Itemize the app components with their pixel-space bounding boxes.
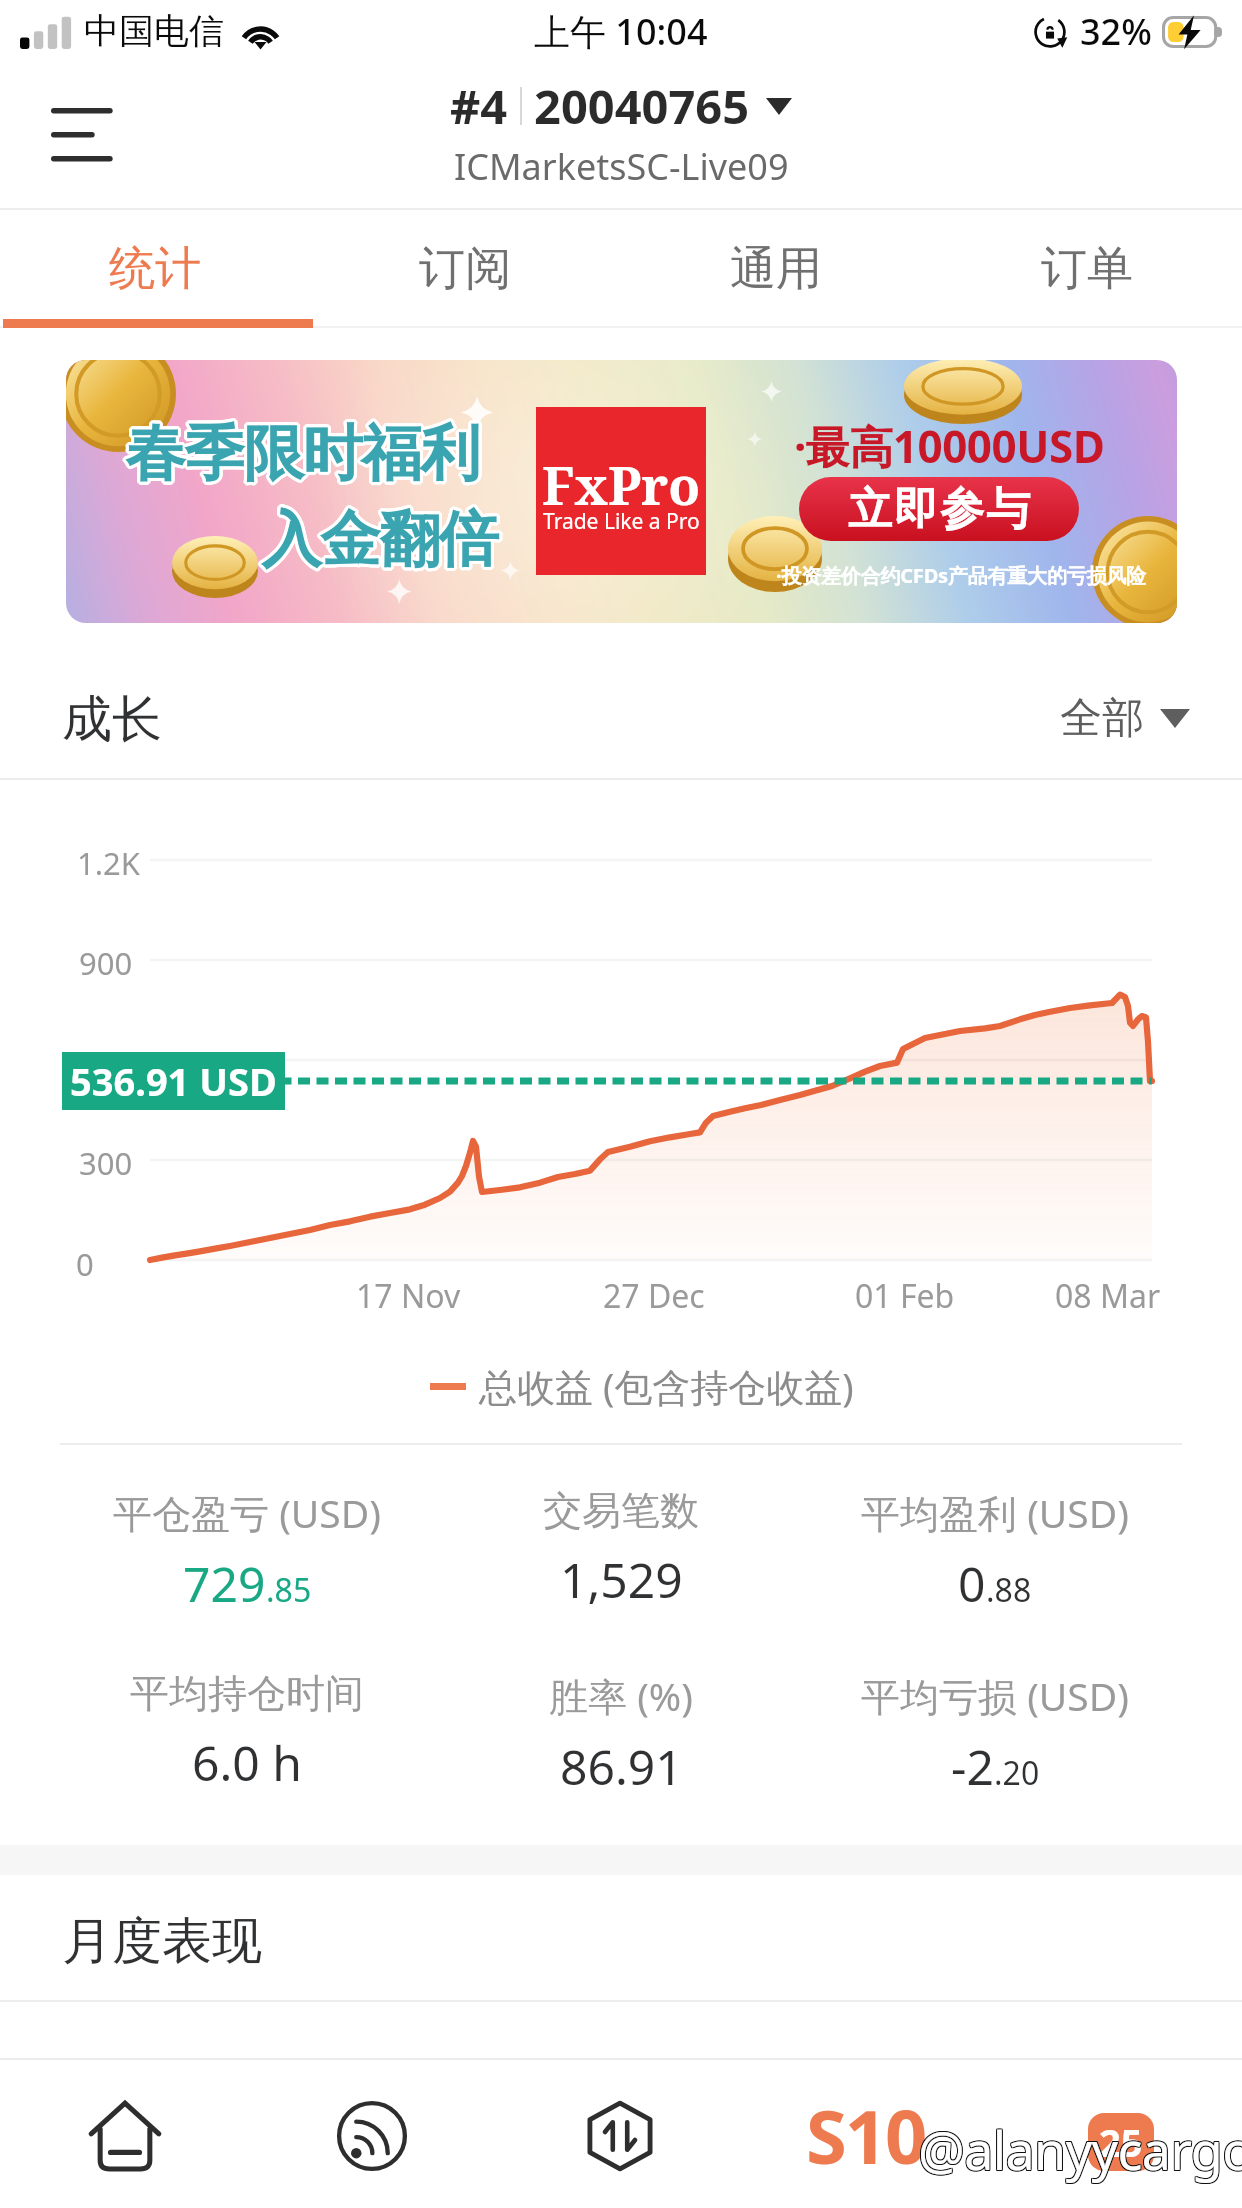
staticText: 春季限时福利 <box>126 413 480 489</box>
staticText: 平均亏损 (USD) <box>861 1669 1129 1722</box>
staticText: 春季限时福利 <box>125 415 479 491</box>
staticText: 春季限时福利 <box>126 414 480 490</box>
staticText: 春季限时福利 <box>123 417 477 493</box>
staticText: @alanyycargo <box>918 2114 1242 2185</box>
staticText: 17 Nov <box>356 1274 461 1318</box>
staticText: Trade Like a Pro <box>543 507 700 536</box>
staticText: 25 <box>1099 2116 1143 2168</box>
button[interactable]: FxPro <box>66 360 1177 623</box>
staticText: 春季限时福利 <box>124 418 478 494</box>
staticText: 春季限时福利 <box>126 419 480 495</box>
staticText: 入金翻倍 <box>262 502 498 578</box>
staticText: 20040765 <box>534 74 750 138</box>
button[interactable]: #4 <box>450 74 792 138</box>
staticText: 春季限时福利 <box>127 417 481 493</box>
button[interactable]: 全部 <box>1060 692 1190 745</box>
staticText: 入金翻倍 <box>259 501 495 577</box>
staticText: 入金翻倍 <box>261 505 497 581</box>
staticText: 成长 <box>62 688 162 751</box>
staticText: 入金翻倍 <box>263 501 499 577</box>
staticText: 春季限时福利 <box>125 418 479 494</box>
staticText: 胜率 (%) <box>549 1669 693 1722</box>
staticText: 通用 <box>730 240 822 298</box>
staticText: 入金翻倍 <box>260 501 496 577</box>
button[interactable]: News <box>772 2060 964 2208</box>
staticText: ·最高10000USD <box>794 416 1105 476</box>
staticText: 0 <box>958 1551 986 1616</box>
staticText: 春季限时福利 <box>129 416 483 492</box>
button[interactable]: 统计 <box>0 210 310 328</box>
staticText: 入金翻倍 <box>261 500 497 576</box>
staticText: 入金翻倍 <box>263 500 499 576</box>
staticText: 春季限时福利 <box>127 414 481 490</box>
staticText: 订单 <box>1041 240 1133 298</box>
staticText: 入金翻倍 <box>263 503 499 579</box>
staticText: 入金翻倍 <box>262 503 498 579</box>
staticText: 总收益 (包含持仓收益) <box>479 1360 854 1412</box>
staticText: .85 <box>266 1568 312 1612</box>
staticText: 春季限时福利 <box>126 416 480 492</box>
staticText: FxPro <box>542 449 701 520</box>
staticText: 入金翻倍 <box>263 505 499 581</box>
staticText: @alanyycargo <box>919 2113 1242 2184</box>
staticText: 春季限时福利 <box>125 417 479 493</box>
staticText: 1.2K <box>77 842 140 884</box>
staticText: 入金翻倍 <box>264 502 500 578</box>
staticText: 春季限时福利 <box>128 417 482 493</box>
staticText: 900 <box>79 942 133 984</box>
staticText: 入金翻倍 <box>264 501 500 577</box>
button[interactable]: Signals <box>275 2060 469 2208</box>
staticText: 春季限时福利 <box>126 415 480 491</box>
button[interactable]: 订阅 <box>310 210 620 328</box>
button[interactable]: Menu <box>20 72 140 184</box>
staticText: 春季限时福利 <box>128 418 482 494</box>
staticText: 春季限时福利 <box>124 417 478 493</box>
staticText: 536.91 USD <box>70 1055 277 1107</box>
staticText: 入金翻倍 <box>264 504 500 580</box>
staticText: 入金翻倍 <box>261 503 497 579</box>
staticText: 春季限时福利 <box>123 416 477 492</box>
button[interactable]: 订单 <box>931 210 1242 328</box>
staticText: 入金翻倍 <box>263 499 499 575</box>
staticText: S10 <box>806 2085 926 2186</box>
button[interactable]: Trade <box>523 2060 717 2208</box>
staticText: 入金翻倍 <box>263 504 499 580</box>
staticText: 86.91 <box>560 1734 683 1799</box>
staticText: 春季限时福利 <box>124 415 478 491</box>
staticText: 入金翻倍 <box>265 503 501 579</box>
staticText: @alanyycargo <box>918 2113 1242 2184</box>
staticText: 春季限时福利 <box>126 418 480 494</box>
staticText: @alanyycargo <box>917 2113 1242 2184</box>
staticText: 入金翻倍 <box>262 505 498 581</box>
staticText: 春季限时福利 <box>124 416 478 492</box>
button[interactable]: 通用 <box>620 210 931 328</box>
staticText: 春季限时福利 <box>123 415 477 491</box>
staticText: 入金翻倍 <box>262 500 498 576</box>
staticText: 春季限时福利 <box>126 417 480 493</box>
button[interactable]: Messages <box>1026 2060 1212 2208</box>
staticText: 春季限时福利 <box>129 415 483 491</box>
button[interactable]: Home <box>28 2060 222 2208</box>
staticText: 春季限时福利 <box>127 419 481 495</box>
staticText: 统计 <box>109 240 201 298</box>
staticText: 入金翻倍 <box>261 499 497 575</box>
staticText: #4 <box>450 74 508 138</box>
staticText: 入金翻倍 <box>261 502 497 578</box>
staticText: 入金翻倍 <box>265 502 501 578</box>
staticText: 春季限时福利 <box>125 413 479 489</box>
staticText: 入金翻倍 <box>263 502 499 578</box>
staticText: 入金翻倍 <box>259 503 495 579</box>
staticText: 月度表现 <box>62 1910 262 1973</box>
staticText: 729 <box>183 1551 266 1616</box>
staticText: @alanyycargo <box>917 2115 1242 2186</box>
staticText: 01 Feb <box>855 1274 955 1318</box>
staticText: 6.0 h <box>192 1730 302 1795</box>
staticText: 订阅 <box>419 240 511 298</box>
staticText: 入金翻倍 <box>261 504 497 580</box>
staticText: 入金翻倍 <box>262 504 498 580</box>
staticText: 入金翻倍 <box>262 501 498 577</box>
staticText: 平均盈利 (USD) <box>861 1486 1129 1539</box>
staticText: 入金翻倍 <box>260 500 496 576</box>
staticText: @alanyycargo <box>919 2114 1242 2185</box>
staticText: ·投资差价合约CFDs产品有重大的亏损风险 <box>776 562 1146 589</box>
